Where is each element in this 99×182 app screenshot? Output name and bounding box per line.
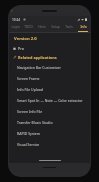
staticText: Screen Info File bbox=[17, 109, 43, 114]
staticText: Transfer Music Studio bbox=[17, 120, 53, 125]
button[interactable]: Screen Frame bbox=[13, 73, 86, 84]
staticText: 10:24 bbox=[12, 18, 21, 22]
staticText: Info File Upload bbox=[17, 87, 43, 92]
button[interactable]: Setup bbox=[48, 23, 62, 32]
button[interactable]: TODO bbox=[22, 23, 35, 32]
button[interactable]: Hints bbox=[35, 23, 48, 32]
staticText: Setup bbox=[51, 25, 60, 29]
staticText: Tools bbox=[65, 25, 73, 29]
staticText: Screen Frame bbox=[17, 76, 40, 81]
button[interactable]: Transfer Music Studio bbox=[13, 117, 86, 128]
staticText: TODO bbox=[24, 25, 33, 29]
button[interactable]: Info File Upload bbox=[13, 84, 86, 95]
staticText: Visual Service bbox=[17, 142, 40, 147]
button[interactable]: Login bbox=[9, 23, 22, 32]
staticText: RAPID System bbox=[17, 131, 41, 136]
staticText: Version 2.0 bbox=[14, 36, 37, 42]
button[interactable]: Navigation Bar Customizer bbox=[13, 62, 86, 73]
button[interactable]: Tools bbox=[62, 23, 76, 32]
button[interactable]: Visual Service bbox=[13, 139, 86, 150]
staticText: Pro bbox=[18, 46, 24, 51]
staticText: Smart Spot In — Note — Color extractor bbox=[17, 98, 83, 103]
button[interactable]: Screen Info File bbox=[13, 106, 86, 117]
button[interactable]: Info bbox=[76, 23, 90, 32]
staticText: Info bbox=[80, 25, 87, 29]
staticText: Related applications bbox=[18, 55, 57, 60]
staticText: Navigation Bar Customizer bbox=[17, 65, 62, 70]
button[interactable]: RAPID System bbox=[13, 128, 86, 139]
button[interactable]: App icon bbox=[13, 45, 86, 51]
other: Tools bbox=[13, 56, 16, 59]
other: App icon bbox=[13, 47, 16, 50]
staticText: Hints bbox=[38, 25, 46, 29]
staticText: Login bbox=[11, 25, 20, 29]
button[interactable]: Smart Spot In — Note — Color extractor bbox=[13, 95, 86, 106]
